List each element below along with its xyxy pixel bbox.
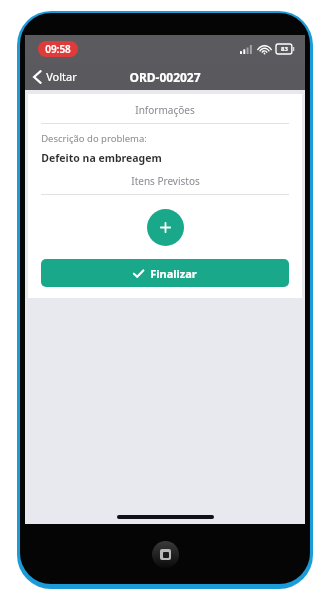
staticText: Voltar <box>46 69 77 84</box>
staticText: ORD-002027 <box>129 69 201 85</box>
staticText: Informações <box>135 103 195 117</box>
button[interactable]: Home <box>152 541 179 568</box>
staticText: Itens Previstos <box>131 174 200 188</box>
staticText: Defeito na embreagem <box>41 151 162 165</box>
staticText: 83 <box>281 45 288 53</box>
staticText: 09:58 <box>45 42 71 56</box>
staticText: Descrição do problema: <box>41 132 147 145</box>
button[interactable]: Voltar <box>25 63 85 90</box>
button[interactable]: Adicionar item <box>147 209 184 246</box>
staticText: Finalizar <box>150 266 197 281</box>
button[interactable]: Finalizar <box>41 259 289 287</box>
